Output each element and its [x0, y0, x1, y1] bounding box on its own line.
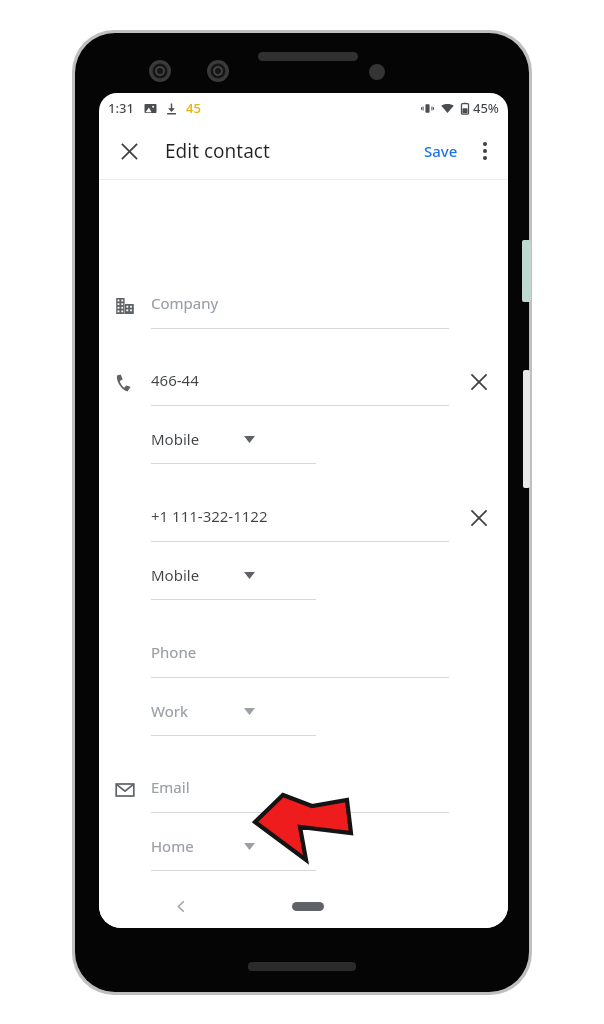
staticText: Work: [151, 701, 188, 721]
staticText: Save: [424, 141, 458, 161]
button[interactable]: Home: [151, 827, 316, 871]
button[interactable]: Clear: [459, 362, 499, 402]
staticText: Email: [151, 777, 190, 797]
button[interactable]: Close: [105, 127, 153, 175]
button[interactable]: Company: [151, 283, 449, 329]
button[interactable]: +1 111-322-1122: [151, 496, 449, 542]
staticText: Phone: [151, 642, 197, 662]
button[interactable]: Clear: [459, 498, 499, 538]
button[interactable]: 466-44: [151, 360, 449, 406]
button[interactable]: Home: [286, 895, 330, 917]
button[interactable]: Phone: [151, 632, 449, 678]
button[interactable]: Save: [416, 133, 466, 169]
button[interactable]: Work: [151, 692, 316, 736]
staticText: 45%: [473, 99, 499, 117]
button[interactable]: Mobile: [151, 420, 316, 464]
staticText: 1:31: [108, 99, 134, 117]
button[interactable]: Email: [151, 767, 449, 813]
button[interactable]: Mobile: [151, 556, 316, 600]
staticText: 466-44: [151, 370, 199, 390]
staticText: Company: [151, 293, 219, 313]
button[interactable]: Back: [161, 886, 201, 926]
staticText: Edit contact: [165, 138, 270, 164]
staticText: +1 111-322-1122: [151, 506, 268, 526]
button[interactable]: More fields: [143, 908, 240, 928]
staticText: Mobile: [151, 565, 200, 585]
staticText: Mobile: [151, 429, 200, 449]
button[interactable]: More options: [464, 130, 506, 172]
staticText: 45: [186, 99, 201, 117]
staticText: Home: [151, 836, 194, 856]
